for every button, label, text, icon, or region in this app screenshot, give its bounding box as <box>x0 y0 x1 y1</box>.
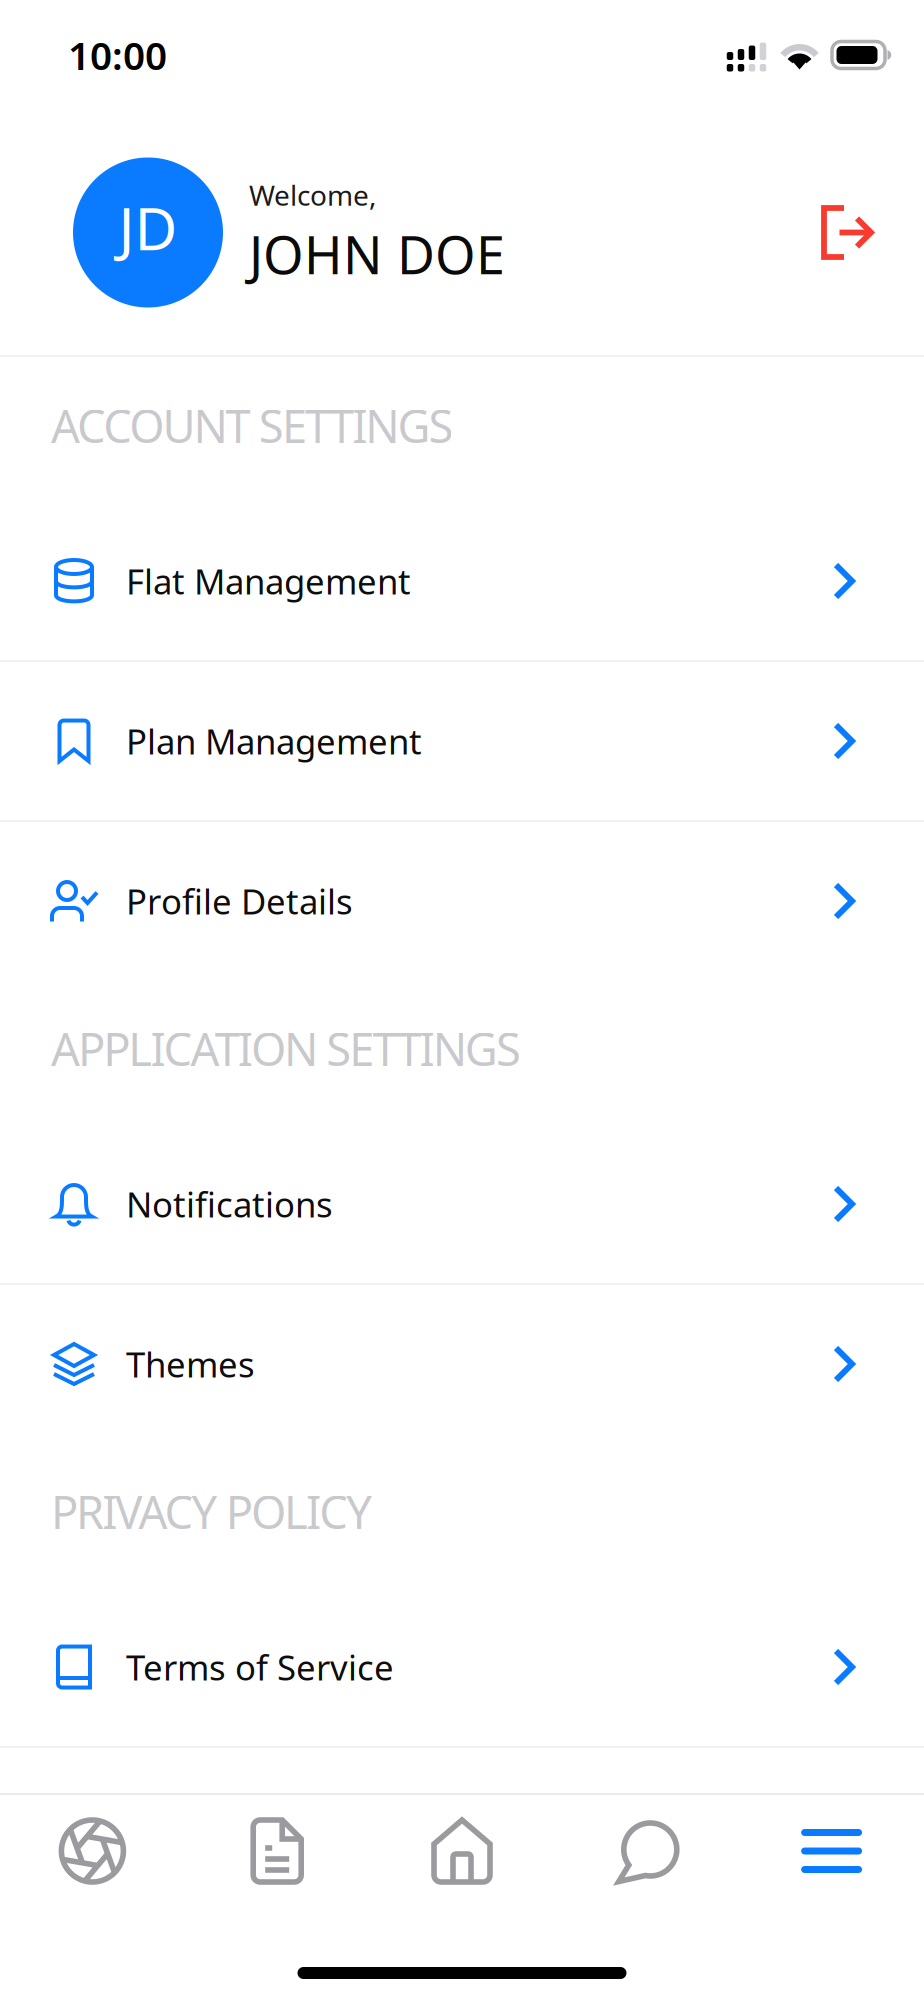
staticText: APPLICATION SETTINGS <box>51 1018 521 1079</box>
button[interactable]: Messages <box>554 1817 739 1885</box>
staticText: JD <box>118 188 177 266</box>
staticText: Notifications <box>126 1181 333 1227</box>
button[interactable]: Flat Management <box>0 502 924 660</box>
staticText: 10:00 <box>68 29 167 81</box>
staticText: ACCOUNT SETTINGS <box>51 395 453 456</box>
button[interactable]: Camera <box>0 1817 185 1885</box>
staticText: Flat Management <box>126 558 411 604</box>
staticText: Profile Details <box>126 878 353 924</box>
button[interactable]: Profile Details <box>0 822 924 980</box>
button[interactable]: Home <box>370 1817 554 1885</box>
staticText: Themes <box>126 1341 255 1387</box>
staticText: JOHN DOE <box>249 220 505 289</box>
staticText: Welcome, <box>249 176 377 214</box>
staticText: Terms of Service <box>126 1644 394 1690</box>
button[interactable]: Log out <box>821 205 874 260</box>
button[interactable]: Themes <box>0 1285 924 1443</box>
button[interactable]: Terms of Service <box>0 1588 924 1746</box>
staticText: Plan Management <box>126 718 422 764</box>
button[interactable]: Notifications <box>0 1125 924 1283</box>
button[interactable]: Plan Management <box>0 662 924 820</box>
button[interactable]: Documents <box>185 1817 370 1885</box>
button[interactable]: Menu <box>739 1817 924 1885</box>
staticText: PRIVACY POLICY <box>51 1481 372 1542</box>
